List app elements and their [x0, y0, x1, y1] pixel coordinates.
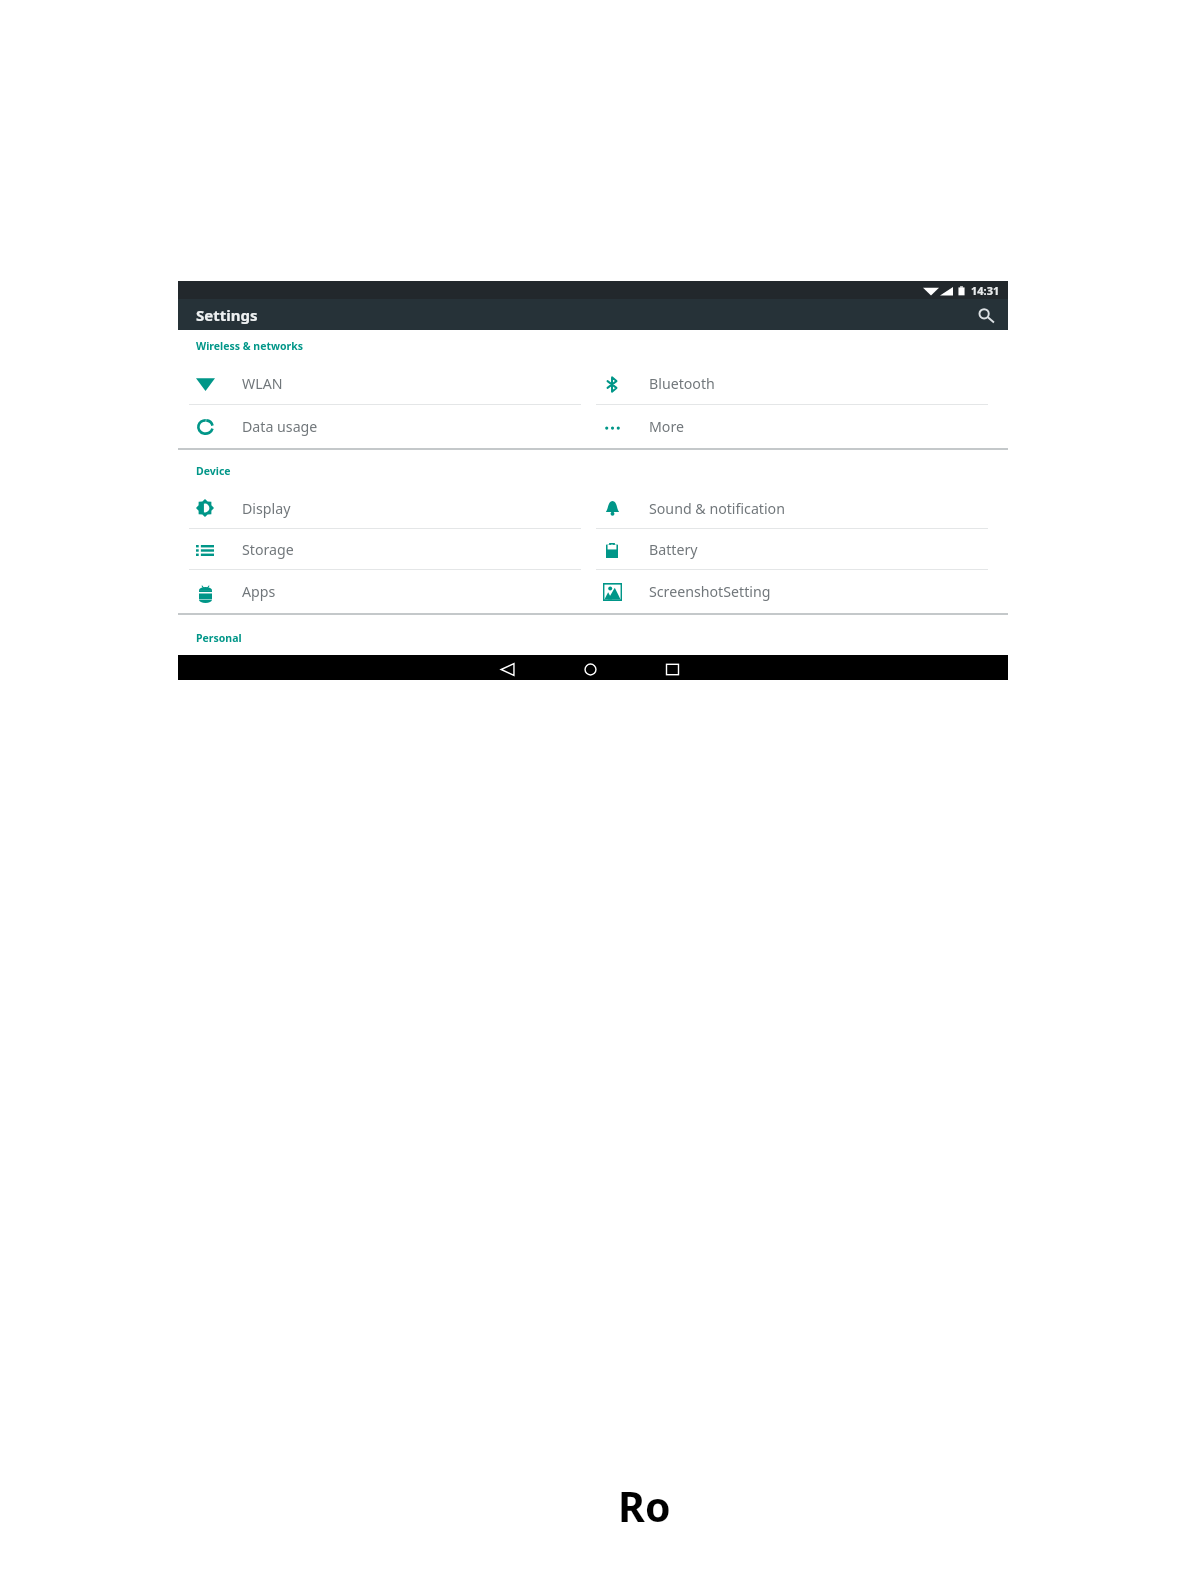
staticText: Sound & notification — [649, 499, 785, 518]
staticText: 14:31 — [971, 283, 1000, 298]
button[interactable]: Bluetooth — [585, 362, 992, 405]
button[interactable]: Search — [974, 303, 998, 327]
button[interactable]: Storage — [178, 529, 585, 570]
staticText: ScreenshotSetting — [649, 582, 771, 601]
staticText: Ro — [618, 1478, 671, 1534]
staticText: Apps — [242, 582, 276, 601]
button[interactable]: ScreenshotSetting — [585, 570, 992, 613]
button[interactable]: Data usage — [178, 405, 585, 448]
staticText: Wireless & networks — [196, 339, 303, 353]
button[interactable]: Apps — [178, 570, 585, 613]
staticText: Settings — [196, 305, 258, 325]
button[interactable]: More — [585, 405, 992, 448]
staticText: Battery — [649, 540, 698, 559]
button[interactable]: Recents — [661, 655, 683, 677]
staticText: Bluetooth — [649, 374, 715, 393]
button[interactable]: WLAN — [178, 362, 585, 405]
button[interactable]: Sound & notification — [585, 487, 992, 529]
button[interactable]: Home — [579, 655, 601, 677]
staticText: Personal — [196, 631, 242, 645]
button[interactable]: Battery — [585, 529, 992, 570]
staticText: Data usage — [242, 417, 318, 436]
staticText: WLAN — [242, 374, 283, 393]
button[interactable]: Display — [178, 487, 585, 529]
staticText: Display — [242, 499, 291, 518]
staticText: More — [649, 417, 685, 436]
staticText: Storage — [242, 540, 294, 559]
button[interactable]: Back — [496, 655, 518, 677]
staticText: Device — [196, 464, 231, 478]
